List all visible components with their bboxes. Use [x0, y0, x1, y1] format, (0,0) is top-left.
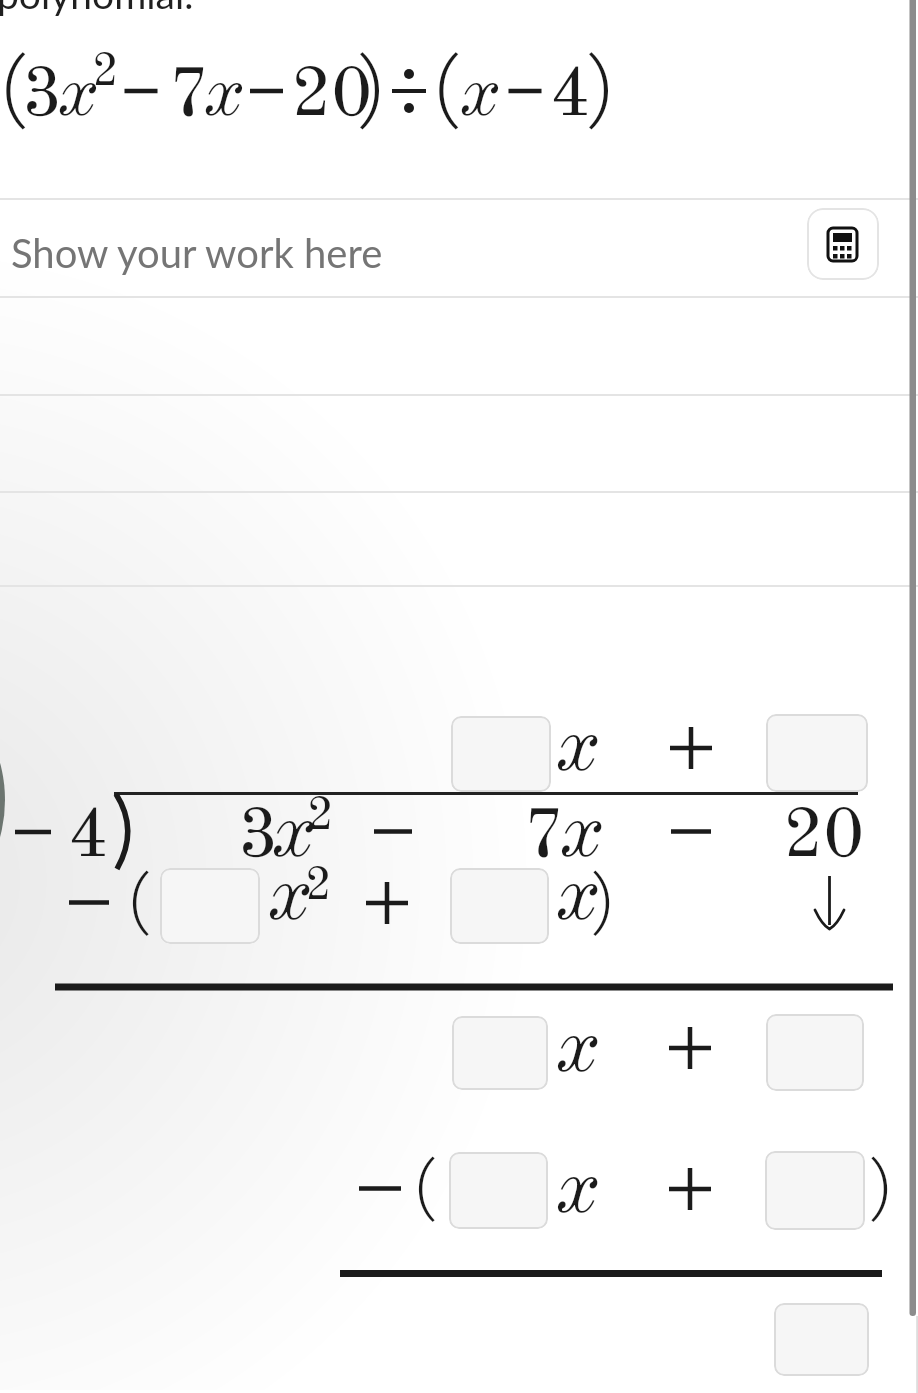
staticText: x [268, 861, 311, 937]
button[interactable] [807, 208, 879, 280]
button[interactable]: Show your work here [11, 229, 383, 277]
staticText: ( [412, 1155, 438, 1225]
button[interactable] [450, 868, 549, 944]
staticText: 2 [92, 50, 119, 96]
staticText: 7 [524, 803, 565, 873]
staticText: x [556, 861, 599, 937]
button[interactable] [765, 1151, 865, 1230]
staticText: 3 [238, 803, 279, 873]
staticText: 2 [305, 864, 332, 910]
button[interactable] [766, 1014, 864, 1091]
staticText: ( [126, 869, 152, 939]
staticText: x [204, 62, 244, 132]
staticText: x [460, 62, 500, 132]
staticText: x [556, 1154, 599, 1230]
staticText: ( [431, 49, 463, 133]
staticText: x [560, 798, 603, 874]
staticText: ( [0, 49, 30, 133]
staticText: ) [585, 49, 617, 133]
button[interactable] [766, 714, 868, 792]
button[interactable] [449, 1152, 548, 1229]
button[interactable] [452, 1016, 548, 1090]
staticText: ) [356, 49, 388, 133]
staticText: ) [868, 1155, 894, 1225]
staticText: x [58, 62, 98, 132]
staticText: polynomial. [0, 0, 194, 18]
staticText: 3 [22, 62, 63, 132]
button[interactable] [160, 868, 260, 944]
staticText: 7 [169, 62, 210, 132]
staticText: 4 [550, 62, 591, 132]
staticText: 4 [68, 803, 109, 873]
staticText: 2 [307, 794, 334, 840]
staticText: 20 [783, 803, 865, 873]
button[interactable] [774, 1303, 869, 1376]
staticText: 20 [291, 62, 373, 132]
staticText: x [556, 712, 599, 788]
staticText: ) [590, 869, 616, 939]
button[interactable] [451, 716, 551, 792]
staticText: x [556, 1013, 599, 1089]
staticText: x [272, 798, 315, 874]
